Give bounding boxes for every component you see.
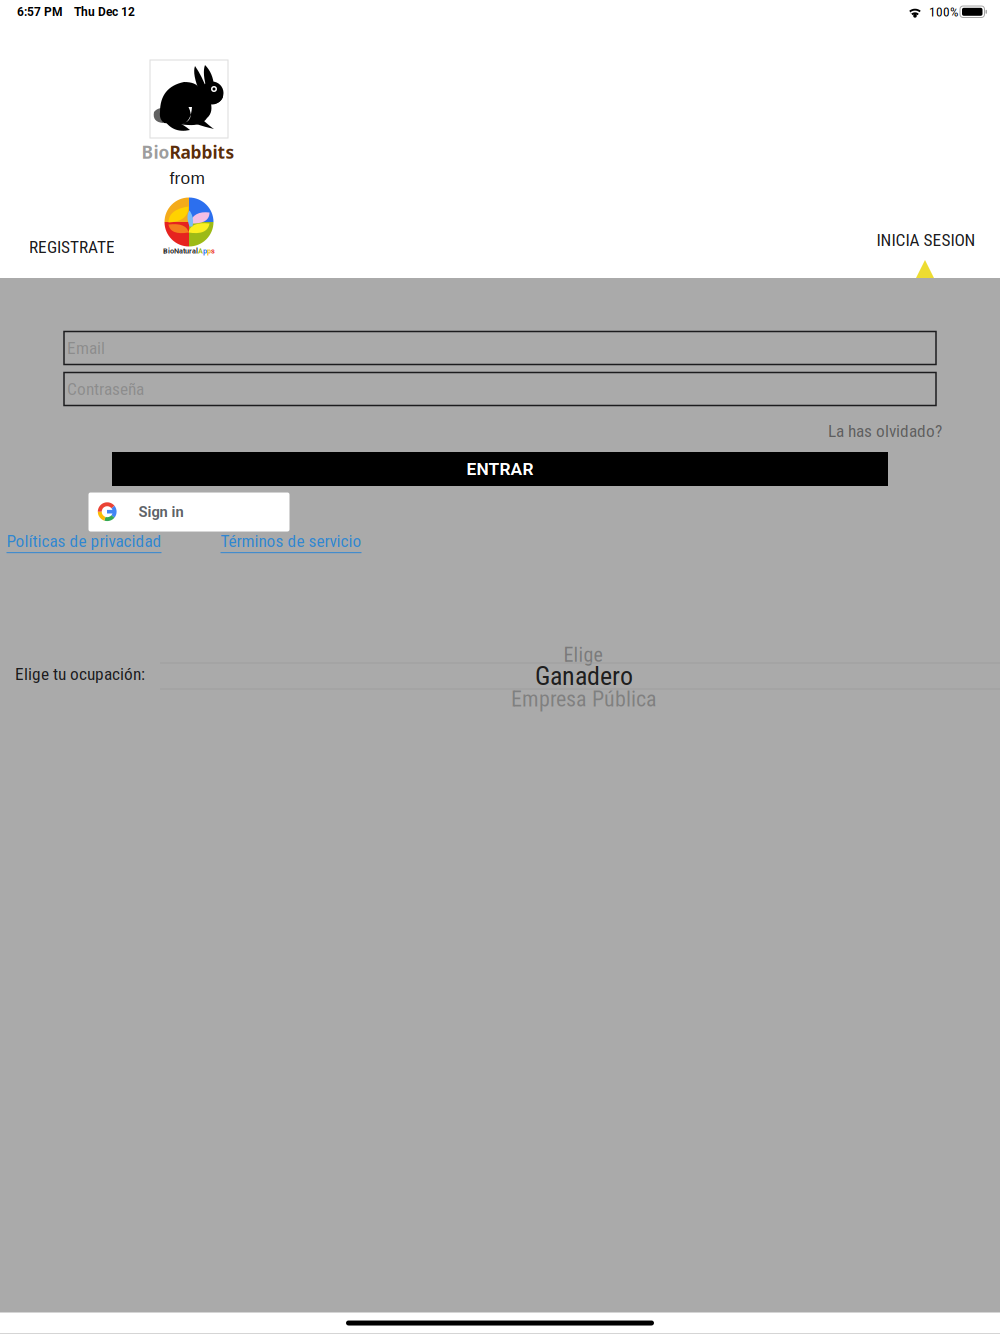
staticText: 6:57 PM	[17, 5, 63, 19]
staticText: 100%	[929, 4, 958, 20]
staticText: INICIA SESION	[876, 230, 975, 250]
button[interactable]: REGISTRATE	[21, 228, 123, 266]
button[interactable]: Email	[64, 331, 936, 364]
staticText: Email	[67, 338, 105, 358]
button[interactable]: La has olvidado?	[823, 415, 947, 447]
button[interactable]: Elige tu ocupación	[160, 638, 1000, 714]
staticText: Ganadero	[535, 661, 633, 691]
staticText: Contraseña	[67, 379, 144, 399]
button[interactable]: Términos de servicio	[217, 526, 364, 558]
staticText: Elige	[563, 643, 602, 667]
staticText: Rabbits	[169, 140, 234, 164]
staticText: from	[169, 168, 204, 188]
staticText: Elige tu ocupación:	[15, 664, 145, 684]
staticText: A	[198, 247, 203, 255]
staticText: Sign in	[138, 503, 183, 521]
staticText: Thu Dec 12	[74, 5, 135, 19]
staticText: ENTRAR	[466, 459, 533, 479]
staticText: Términos de servicio	[220, 531, 361, 551]
staticText: REGISTRATE	[29, 237, 115, 257]
button[interactable]: Contraseña	[64, 372, 936, 405]
staticText: s	[211, 247, 215, 255]
staticText: BioNatural	[163, 247, 198, 255]
button[interactable]: ENTRAR	[112, 452, 888, 486]
staticText: Bio	[141, 140, 169, 164]
staticText: p	[207, 247, 211, 255]
staticText: p	[203, 247, 207, 255]
staticText: Políticas de privacidad	[6, 531, 161, 551]
staticText: La has olvidado?	[828, 421, 942, 441]
button[interactable]: INICIA SESION	[868, 221, 983, 259]
button[interactable]: Sign in	[88, 492, 289, 531]
staticText: Empresa Pública	[511, 686, 657, 712]
button[interactable]: Políticas de privacidad	[3, 526, 164, 558]
